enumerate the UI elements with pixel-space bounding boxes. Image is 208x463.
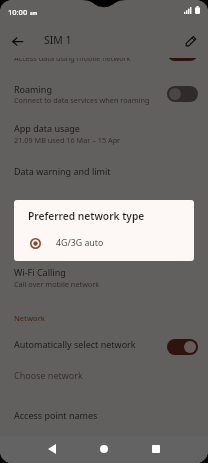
staticText: Connect to data services when roaming	[14, 95, 150, 105]
button[interactable]: Back	[39, 436, 65, 462]
button[interactable]: Back	[2, 26, 32, 56]
staticText: Network	[14, 313, 45, 323]
staticText: Wi-Fi Calling	[14, 266, 66, 278]
button[interactable]: Recents	[143, 436, 169, 462]
button[interactable]	[0, 404, 208, 432]
button[interactable]	[0, 120, 208, 156]
staticText: Access point names	[14, 409, 98, 421]
staticText: App data usage	[14, 122, 80, 134]
staticText: Preferred network type	[28, 209, 145, 223]
staticText: Call over mobile network	[14, 279, 100, 289]
button[interactable]	[0, 160, 208, 192]
staticText: 21.09 MB used 16 Mar – 15 Apr	[14, 135, 121, 145]
button[interactable]: Off	[167, 86, 198, 102]
button[interactable]	[0, 334, 208, 364]
staticText: Choose network	[14, 369, 83, 381]
button[interactable]: 4G/3G auto	[14, 231, 194, 255]
button[interactable]	[0, 80, 208, 116]
staticText: Access data using mobile network	[14, 53, 131, 63]
staticText: am	[30, 10, 38, 16]
button[interactable]	[0, 366, 208, 394]
staticText: Automatically select network	[14, 338, 136, 350]
staticText: SIM 1	[44, 33, 72, 47]
staticText: Data warning and limit	[14, 165, 111, 177]
button[interactable]: Edit	[176, 26, 206, 56]
staticText: 4G/3G auto	[56, 237, 104, 249]
staticText: Roaming	[14, 83, 52, 95]
button[interactable]: On	[167, 339, 198, 355]
staticText: 10:00	[8, 7, 28, 17]
button[interactable]: Home	[91, 436, 117, 462]
button[interactable]	[0, 264, 208, 298]
